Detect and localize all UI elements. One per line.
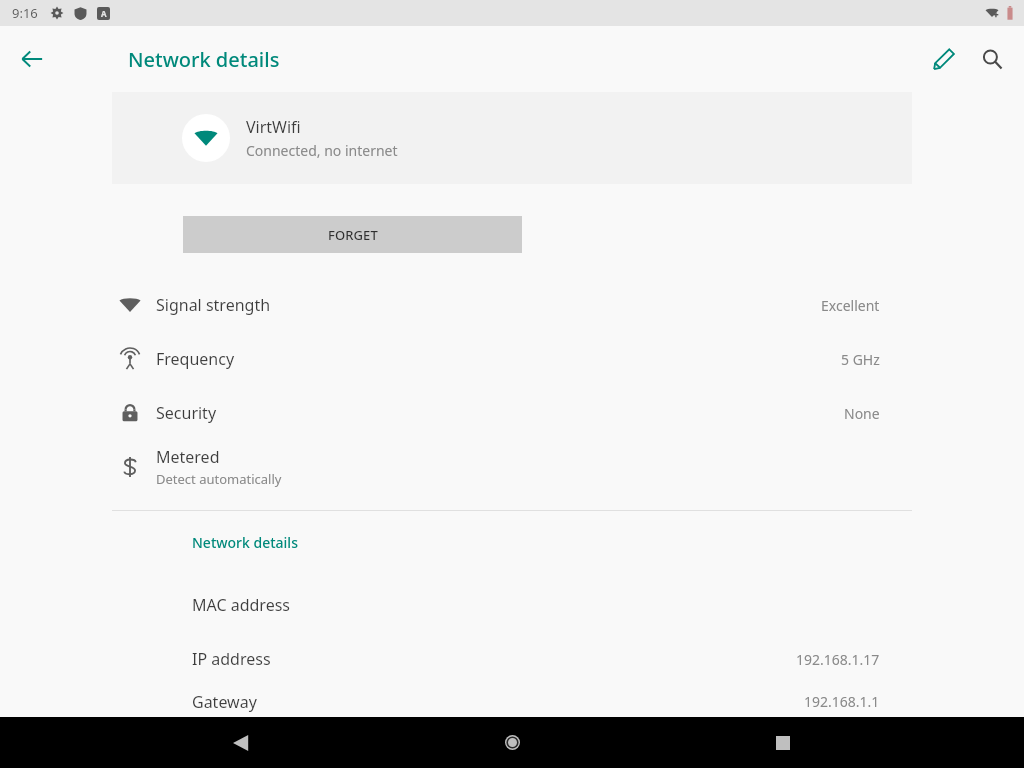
button[interactable]: IP address bbox=[0, 632, 1024, 686]
button[interactable]: Search bbox=[968, 35, 1016, 83]
button[interactable]: Modify network bbox=[920, 35, 968, 83]
staticText: Network details bbox=[192, 533, 298, 552]
button[interactable]: Back bbox=[211, 717, 271, 768]
button[interactable]: Back bbox=[8, 35, 56, 83]
button[interactable]: Security bbox=[0, 386, 1024, 440]
staticText: 192.168.1.1 bbox=[804, 692, 880, 711]
staticText: IP address bbox=[192, 648, 796, 670]
staticText: None bbox=[844, 404, 880, 423]
staticText: 192.168.1.17 bbox=[796, 650, 880, 669]
button[interactable]: FORGET bbox=[183, 216, 522, 253]
button[interactable]: Signal strength bbox=[0, 278, 1024, 332]
staticText: FORGET bbox=[328, 226, 378, 244]
button[interactable]: Metered bbox=[0, 440, 1024, 494]
button[interactable]: VirtWifi bbox=[112, 92, 912, 184]
staticText: Network details bbox=[128, 46, 280, 73]
staticText: Excellent bbox=[821, 296, 880, 315]
staticText: Signal strength bbox=[156, 294, 271, 316]
button[interactable]: Frequency bbox=[0, 332, 1024, 386]
staticText: Gateway bbox=[192, 691, 804, 713]
staticText: Security bbox=[156, 402, 217, 424]
staticText: A bbox=[101, 8, 107, 19]
button[interactable]: MAC address bbox=[0, 578, 1024, 632]
staticText: 9:16 bbox=[12, 4, 38, 22]
staticText: Frequency bbox=[156, 348, 235, 370]
button[interactable]: Recent apps bbox=[753, 717, 813, 768]
staticText: Metered bbox=[156, 446, 220, 468]
button[interactable]: Gateway bbox=[0, 686, 1024, 717]
button[interactable]: Home bbox=[482, 717, 542, 768]
staticText: MAC address bbox=[192, 594, 880, 616]
staticText: Detect automatically bbox=[156, 470, 282, 488]
staticText: Connected, no internet bbox=[246, 141, 398, 160]
staticText: VirtWifi bbox=[246, 116, 301, 138]
staticText: 5 GHz bbox=[841, 350, 880, 369]
